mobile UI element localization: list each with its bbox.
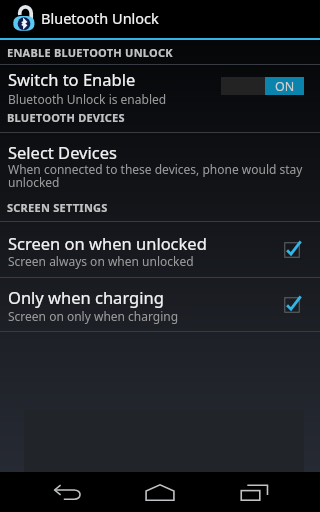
staticText: SCREEN SETTINGS xyxy=(7,200,108,215)
staticText: Screen on only when charging xyxy=(8,308,179,324)
button[interactable]: BLUETOOTH DEVICES xyxy=(0,110,320,132)
staticText: Bluetooth Unlock xyxy=(41,8,159,28)
button[interactable]: Toggle Bluetooth Unlock xyxy=(221,77,304,95)
button[interactable]: ENABLE BLUETOOTH UNLOCK xyxy=(0,45,320,64)
staticText: BLUETOOTH DEVICES xyxy=(7,110,125,125)
staticText: Select Devices xyxy=(8,141,117,163)
button[interactable]: Recents xyxy=(225,473,285,512)
button[interactable]: Checkbox xyxy=(282,295,302,315)
staticText: Screen always on when unlocked xyxy=(8,253,194,269)
staticText: Switch to Enable xyxy=(8,68,136,90)
button[interactable]: Select Devices xyxy=(0,133,320,196)
staticText: ENABLE BLUETOOTH UNLOCK xyxy=(7,45,173,60)
staticText: Screen on when unlocked xyxy=(8,232,207,254)
button[interactable]: Home xyxy=(130,473,190,512)
staticText: When connected to these devices, phone w… xyxy=(8,161,303,191)
staticText: Only when charging xyxy=(8,286,164,308)
button[interactable]: Only when charging xyxy=(0,278,320,331)
button[interactable]: SCREEN SETTINGS xyxy=(0,200,320,221)
staticText: Bluetooth Unlock is enabled xyxy=(8,91,167,107)
button[interactable]: Screen on when unlocked xyxy=(0,222,320,277)
button[interactable]: Checkbox xyxy=(282,240,302,260)
staticText: ON xyxy=(275,78,295,95)
button[interactable]: Back xyxy=(37,473,97,512)
button[interactable]: Switch to Enable xyxy=(0,65,320,106)
